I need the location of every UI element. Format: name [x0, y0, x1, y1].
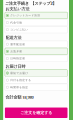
- staticText: 配送方法: [6, 35, 22, 40]
- button[interactable]: 代金引換: [5, 19, 67, 26]
- button[interactable]: 時間帯を指定: [5, 84, 67, 91]
- button[interactable]: 日時指定便: [5, 55, 67, 62]
- staticText: 時間帯を指定: [10, 86, 28, 89]
- button[interactable]: コンビニ払い: [5, 26, 67, 33]
- button[interactable]: ご注文を確定する: [5, 107, 67, 118]
- button[interactable]: お急ぎ便: [5, 48, 67, 55]
- staticText: お支払い方法: [6, 6, 30, 11]
- button[interactable]: 通常配送便: [5, 41, 67, 48]
- staticText: ご注文を確定する: [20, 110, 52, 115]
- staticText: お届け日時: [6, 64, 26, 69]
- staticText: クレジットカード決済: [10, 14, 40, 17]
- staticText: 最短でお届け: [10, 71, 28, 75]
- button[interactable]: 日付を指定する: [5, 77, 67, 83]
- staticText: コンビニ払い: [10, 28, 28, 31]
- button[interactable]: クレジットカード決済: [5, 12, 67, 19]
- staticText: 代金引換: [10, 21, 22, 24]
- staticText: お急ぎ便: [10, 50, 22, 53]
- staticText: ご注文手続き: [5, 1, 29, 6]
- staticText: 【ステップ2】: [30, 1, 56, 6]
- staticText: 通常配送便: [10, 43, 25, 46]
- staticText: 日時指定便: [10, 57, 25, 60]
- staticText: 日付を指定する: [10, 78, 31, 82]
- staticText: 合計金額 ¥4,980: [6, 94, 34, 100]
- button[interactable]: 最短でお届け: [5, 70, 67, 76]
